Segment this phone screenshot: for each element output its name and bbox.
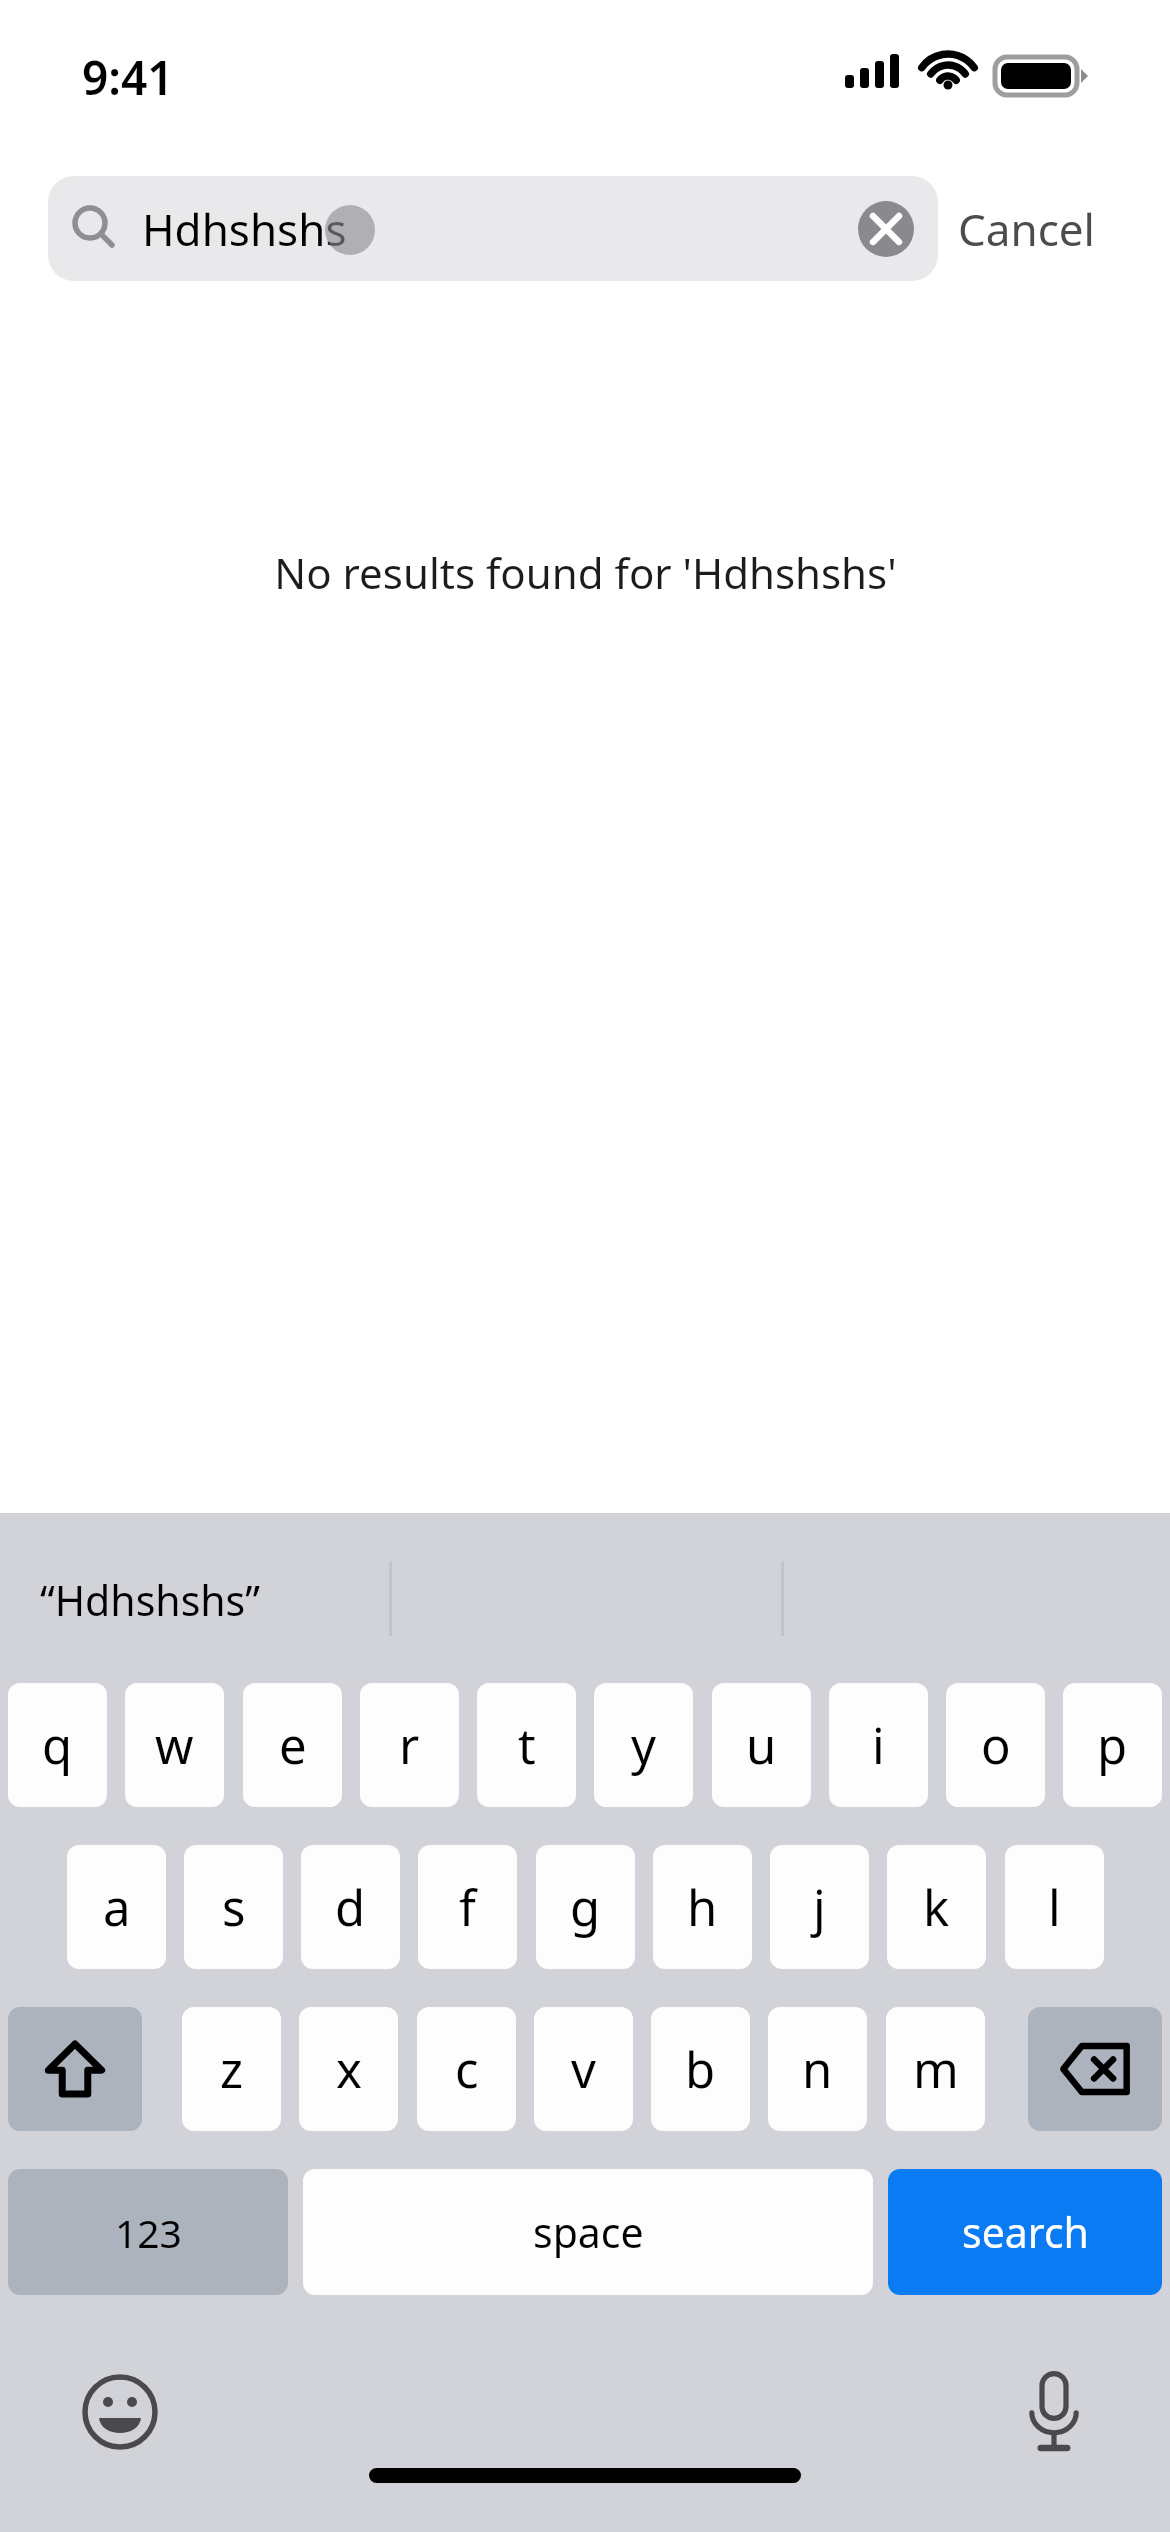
button[interactable]: q <box>8 1683 107 1807</box>
button[interactable]: k <box>887 1845 986 1969</box>
staticText: “Hdhshshs” <box>40 1572 260 1628</box>
button[interactable]: m <box>886 2007 985 2131</box>
button[interactable]: u <box>712 1683 811 1807</box>
staticText: o <box>981 1712 1011 1779</box>
button[interactable]: o <box>946 1683 1045 1807</box>
button[interactable]: b <box>651 2007 750 2131</box>
button[interactable]: 123 <box>8 2169 288 2295</box>
button[interactable]: w <box>125 1683 224 1807</box>
staticText: t <box>518 1712 536 1779</box>
staticText: search <box>962 2204 1089 2260</box>
staticText: f <box>459 1874 476 1941</box>
staticText: p <box>1097 1712 1128 1779</box>
button[interactable]: j <box>770 1845 869 1969</box>
staticText: r <box>399 1712 420 1779</box>
button[interactable]: Dictation <box>1012 2370 1096 2454</box>
button[interactable]: space <box>303 2169 873 2295</box>
button[interactable]: search <box>888 2169 1162 2295</box>
staticText: e <box>279 1712 307 1779</box>
staticText: Cancel <box>958 199 1095 259</box>
button[interactable]: c <box>417 2007 516 2131</box>
staticText: y <box>631 1712 656 1779</box>
staticText: v <box>571 2036 596 2103</box>
staticText: z <box>220 2036 244 2103</box>
staticText: space <box>533 2204 644 2260</box>
button[interactable]: z <box>182 2007 281 2131</box>
button[interactable]: l <box>1005 1845 1104 1969</box>
staticText: n <box>802 2036 833 2103</box>
button[interactable]: t <box>477 1683 576 1807</box>
button[interactable]: a <box>67 1845 166 1969</box>
button[interactable]: Hdhshshs <box>48 176 938 281</box>
button[interactable]: p <box>1063 1683 1162 1807</box>
button[interactable]: y <box>594 1683 693 1807</box>
staticText: d <box>335 1874 366 1941</box>
staticText: b <box>685 2036 716 2103</box>
staticText: w <box>155 1712 194 1779</box>
button[interactable]: r <box>360 1683 459 1807</box>
button[interactable]: n <box>768 2007 867 2131</box>
button[interactable]: i <box>829 1683 928 1807</box>
staticText: s <box>222 1874 246 1941</box>
staticText: l <box>1048 1874 1061 1941</box>
button[interactable]: Clear text <box>858 201 914 257</box>
button[interactable]: Backspace <box>1028 2007 1162 2131</box>
staticText: x <box>336 2036 362 2103</box>
staticText: a <box>103 1874 131 1941</box>
button[interactable]: f <box>418 1845 517 1969</box>
button[interactable]: Emoji keyboard <box>78 2370 162 2454</box>
button[interactable]: h <box>653 1845 752 1969</box>
staticText: g <box>570 1874 601 1941</box>
staticText: j <box>813 1874 826 1941</box>
staticText: h <box>687 1874 718 1941</box>
button[interactable]: e <box>243 1683 342 1807</box>
staticText: c <box>455 2036 479 2103</box>
staticText: Hdhshshs <box>142 199 347 259</box>
staticText: m <box>913 2036 959 2103</box>
staticText: q <box>42 1712 73 1779</box>
button[interactable]: d <box>301 1845 400 1969</box>
button[interactable]: Cancel <box>958 176 1148 281</box>
staticText: 9:41 <box>82 46 174 104</box>
staticText: k <box>923 1874 950 1941</box>
staticText: u <box>746 1712 777 1779</box>
button[interactable]: “Hdhshshs” <box>40 1545 370 1655</box>
staticText: i <box>872 1712 885 1779</box>
button[interactable]: v <box>534 2007 633 2131</box>
button[interactable]: x <box>299 2007 398 2131</box>
staticText: 123 <box>115 2206 182 2259</box>
staticText: No results found for 'Hdhshshs' <box>274 544 897 601</box>
button[interactable]: Shift <box>8 2007 142 2131</box>
button[interactable]: g <box>536 1845 635 1969</box>
button[interactable]: s <box>184 1845 283 1969</box>
